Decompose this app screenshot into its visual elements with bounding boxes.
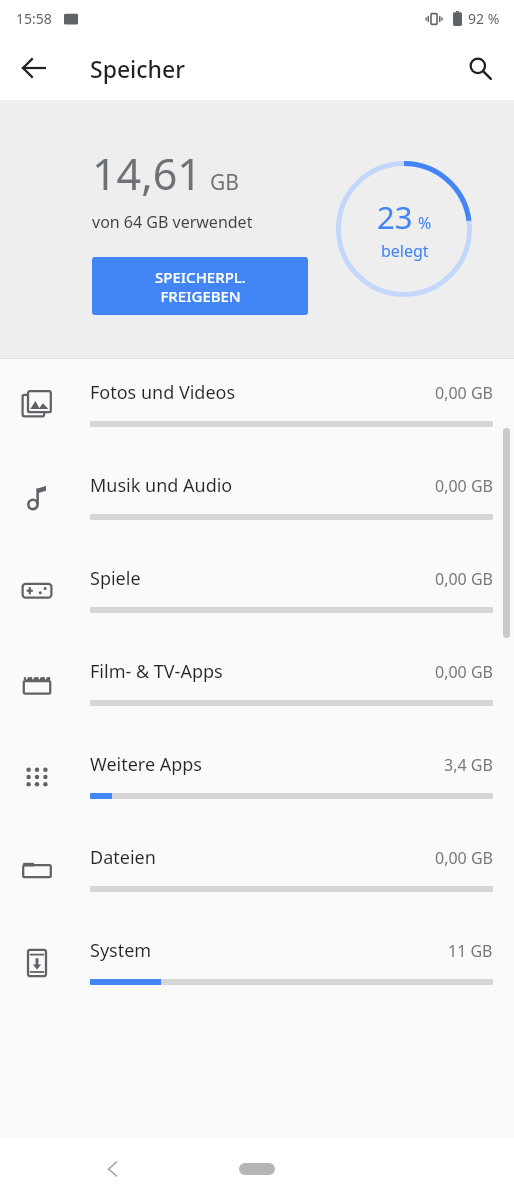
button[interactable]: Weitere Apps xyxy=(0,730,514,823)
staticText: 14,61 xyxy=(92,144,202,203)
staticText: 0,00 GB xyxy=(435,382,493,404)
staticText: SPEICHERPL. FREIGEBEN xyxy=(155,267,246,306)
button[interactable]: Back xyxy=(90,1146,136,1192)
staticText: GB xyxy=(210,168,239,197)
staticText: 0,00 GB xyxy=(435,847,493,869)
staticText: 11 GB xyxy=(448,940,493,962)
button[interactable]: SPEICHERPL. FREIGEBEN xyxy=(92,257,308,315)
button[interactable]: Dateien xyxy=(0,823,514,916)
staticText: 23 xyxy=(377,196,413,238)
staticText: belegt xyxy=(381,240,429,262)
staticText: von 64 GB verwendet xyxy=(92,211,253,233)
button[interactable]: Back xyxy=(8,42,60,94)
staticText: Speicher xyxy=(90,53,185,84)
button[interactable]: Search xyxy=(454,42,506,94)
button[interactable]: Film- & TV-Apps xyxy=(0,637,514,730)
staticText: Fotos und Videos xyxy=(90,380,435,405)
button[interactable]: System xyxy=(0,916,514,1009)
button[interactable]: Musik und Audio xyxy=(0,451,514,544)
staticText: 92 % xyxy=(468,9,500,28)
staticText: 0,00 GB xyxy=(435,568,493,590)
staticText: 0,00 GB xyxy=(435,661,493,683)
button[interactable]: Home xyxy=(239,1163,275,1175)
button[interactable]: Fotos und Videos xyxy=(0,358,514,451)
staticText: 0,00 GB xyxy=(435,475,493,497)
staticText: Musik und Audio xyxy=(90,473,435,498)
button[interactable]: Spiele xyxy=(0,544,514,637)
staticText: System xyxy=(90,938,448,963)
staticText: 15:58 xyxy=(16,9,52,28)
staticText: Film- & TV-Apps xyxy=(90,659,435,684)
staticText: Weitere Apps xyxy=(90,752,444,777)
staticText: % xyxy=(418,212,432,234)
staticText: Dateien xyxy=(90,845,435,870)
staticText: Spiele xyxy=(90,566,435,591)
staticText: 3,4 GB xyxy=(444,754,493,776)
